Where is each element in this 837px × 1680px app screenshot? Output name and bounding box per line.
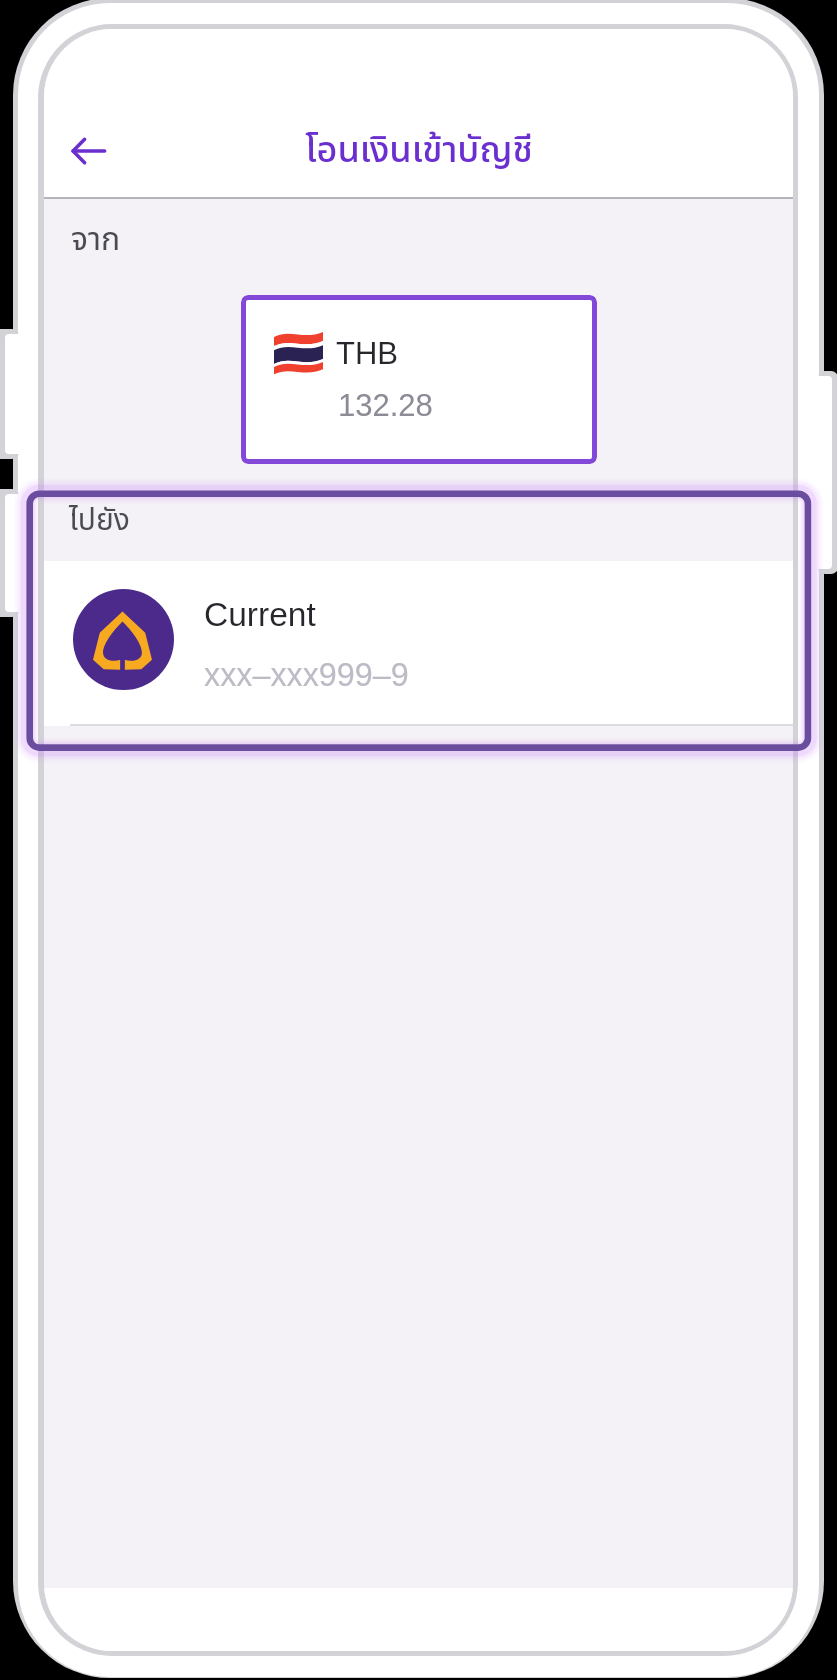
staticText: THB (336, 336, 398, 371)
staticText: จาก (71, 216, 121, 264)
staticText: โอนเงินเข้าบัญชี (305, 124, 533, 178)
staticText: ไปยัง (69, 498, 130, 543)
staticText: Current (204, 596, 316, 633)
staticText: 132.28 (338, 388, 433, 423)
button[interactable]: Back (52, 115, 124, 187)
staticText: xxx–xxx999–9 (204, 657, 409, 693)
button[interactable]: THB (241, 295, 597, 464)
button[interactable]: Current (44, 561, 793, 726)
